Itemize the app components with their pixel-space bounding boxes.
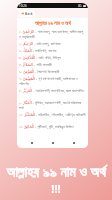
staticText: ১১. الْخَالِقُ - সৃষ্টিকর্তা, স্রষ্টা, স… bbox=[19, 124, 74, 129]
staticText: !!! bbox=[0, 181, 112, 196]
button[interactable]: ৬. الْمُؤْمِنُ - নিরাপত্তা বিধানকারী bbox=[17, 68, 88, 75]
staticText: আল্লাহর ৯৯ নাম ও অর্থ bbox=[35, 20, 71, 27]
staticText: ৭. الْمُهَيْمِنُ - পূর্ণ রক্ষণাবেক্ষণকার… bbox=[19, 76, 86, 85]
staticText: ৬. الْمُؤْمِنُ - নিরাপত্তা বিধানকারী bbox=[19, 69, 60, 74]
staticText: ৮. الْعَزِيْزُ - পরাক্রমশালী, মহাশক্তিধর… bbox=[19, 88, 84, 93]
button[interactable]: ১১. الْخَالِقُ - সৃষ্টিকর্তা, স্রষ্টা, স… bbox=[17, 123, 88, 135]
button[interactable]: ১. الرَّحْمٰنُ - পরম দয়ালু, পরম করুণাময… bbox=[17, 28, 88, 40]
staticText: ৪. الْقُدُّوْسُ - অতি পবিত্র, নিষ্কলুষ bbox=[19, 55, 61, 60]
staticText: ২. الرَّحِيْمُ - অতি দয়ালু, করুণাময় bbox=[19, 41, 61, 46]
button[interactable]: ৮. الْعَزِيْزُ - পরাক্রমশালী, মহাশক্তিধর… bbox=[17, 87, 88, 99]
button[interactable]: ৩. الْمَلِكُ - সর্বাধিপতি, বাদশাহ bbox=[17, 47, 88, 54]
staticText: 10:26 bbox=[19, 4, 27, 8]
staticText: আল্লাহর ৯৯ নাম ও অর্থ bbox=[0, 162, 112, 181]
button[interactable]: ৪. الْقُدُّوْسُ - অতি পবিত্র, নিষ্কলুষ bbox=[17, 54, 88, 61]
button[interactable]: ৯. الْجَبَّارُ - দুর্নিবার, মহাপ্রতাপশাল… bbox=[17, 99, 88, 111]
staticText: ৯. الْجَبَّارُ - দুর্নিবার, মহাপ্রতাপশাল… bbox=[19, 100, 86, 109]
button[interactable]: ৫. السَّلاَمُ - শান্তি দানকারী bbox=[17, 61, 88, 68]
button[interactable]: ১০. الْمُتَكَبِّرُ - মহিমান্বিত, গৌরবান্… bbox=[17, 111, 88, 123]
staticText: ১. الرَّحْمٰنُ - পরম দয়ালু, পরম করুণাময… bbox=[19, 29, 86, 39]
staticText: ১০. الْمُتَكَبِّرُ - মহিমান্বিত, গৌরবান্… bbox=[19, 112, 86, 117]
staticText: ৫. السَّلاَمُ - শান্তি দানকারী bbox=[19, 62, 52, 67]
staticText: Back bbox=[25, 11, 33, 16]
button[interactable]: ২. الرَّحِيْمُ - অতি দয়ালু, করুণাময় bbox=[17, 40, 88, 47]
staticText: ৩. الْمَلِكُ - সর্বাধিপতি, বাদশাহ bbox=[19, 48, 57, 53]
staticText: 4G bbox=[78, 4, 82, 8]
button[interactable]: ৭. الْمُهَيْمِنُ - পূর্ণ রক্ষণাবেক্ষণকার… bbox=[17, 75, 88, 87]
button[interactable]: Back bbox=[19, 10, 35, 17]
